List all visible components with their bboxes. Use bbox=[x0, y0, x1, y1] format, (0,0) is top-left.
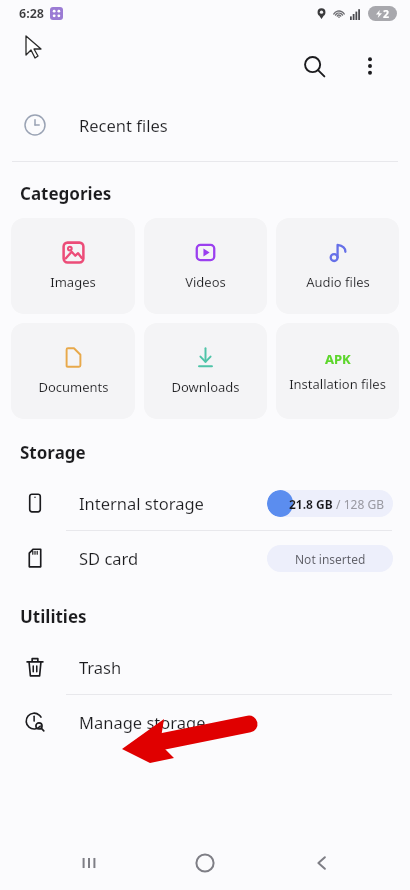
staticText: Downloads bbox=[171, 378, 240, 396]
staticText: Categories bbox=[20, 182, 112, 205]
button[interactable]: Home bbox=[177, 835, 233, 890]
staticText: Videos bbox=[185, 273, 226, 291]
staticText: Utilities bbox=[20, 605, 87, 628]
button[interactable]: SD card bbox=[0, 531, 410, 585]
button[interactable]: Back bbox=[294, 835, 350, 890]
button[interactable]: Recent files bbox=[0, 98, 410, 152]
button[interactable]: Downloads bbox=[144, 323, 267, 419]
button[interactable]: Images bbox=[11, 218, 135, 314]
staticText: 6:28 bbox=[19, 5, 44, 22]
staticText: Documents bbox=[38, 378, 109, 396]
staticText: APK bbox=[325, 350, 351, 368]
staticText: SD card bbox=[79, 547, 139, 569]
staticText: Internal storage bbox=[79, 492, 204, 514]
button[interactable]: Search bbox=[292, 44, 336, 88]
staticText: Trash bbox=[79, 656, 122, 678]
staticText: Manage storage bbox=[79, 711, 206, 733]
button[interactable]: APK bbox=[276, 323, 399, 419]
staticText: / 128 GB bbox=[333, 496, 384, 512]
staticText: Recent files bbox=[79, 114, 168, 136]
button[interactable]: Documents bbox=[11, 323, 135, 419]
button[interactable]: Videos bbox=[144, 218, 267, 314]
staticText: Not inserted bbox=[295, 551, 366, 567]
button[interactable]: Manage storage bbox=[0, 695, 410, 749]
button[interactable]: More options bbox=[350, 46, 390, 86]
staticText: Storage bbox=[20, 441, 86, 464]
button[interactable]: Recents bbox=[61, 835, 117, 890]
staticText: Images bbox=[50, 273, 96, 291]
staticText: 21.8 GB bbox=[289, 496, 333, 512]
button[interactable]: Trash bbox=[0, 640, 410, 694]
staticText: Installation files bbox=[289, 375, 386, 393]
button[interactable]: Internal storage bbox=[0, 476, 410, 530]
staticText: 2 bbox=[383, 7, 390, 21]
button[interactable]: Audio files bbox=[276, 218, 399, 314]
staticText: Audio files bbox=[306, 273, 370, 291]
